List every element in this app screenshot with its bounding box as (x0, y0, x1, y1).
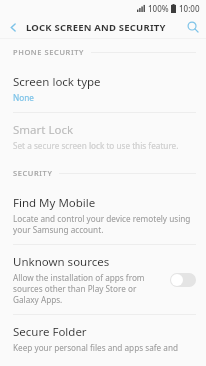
staticText: Screen lock type (13, 74, 101, 90)
staticText: Smart Lock (13, 122, 74, 138)
button[interactable]: Smart Lock (0, 113, 206, 160)
button[interactable]: Secure Folder (0, 315, 206, 366)
button[interactable]: Search (180, 16, 206, 38)
staticText: Allow the installation of apps from sour… (13, 272, 162, 305)
button[interactable]: Unknown sources toggle (170, 273, 196, 287)
button[interactable]: Screen lock type (0, 65, 206, 113)
button[interactable]: Unknown sources (0, 245, 206, 315)
staticText: PHONE SECURITY (13, 47, 85, 57)
staticText: 10:00 (179, 3, 200, 14)
staticText: LOCK SCREEN AND SECURITY (26, 21, 166, 34)
staticText: 100% (148, 3, 169, 14)
button[interactable]: Back (0, 16, 26, 38)
staticText: Find My Mobile (13, 195, 96, 211)
staticText: Set a secure screen lock to use this fea… (13, 140, 179, 151)
staticText: Locate and control your device remotely … (13, 213, 196, 235)
staticText: Keep your personal files and apps safe a… (13, 342, 196, 357)
staticText: SECURITY (13, 168, 53, 178)
staticText: Secure Folder (13, 324, 87, 340)
staticText: None (13, 92, 34, 103)
staticText: Unknown sources (13, 254, 110, 270)
button[interactable]: Find My Mobile (0, 186, 206, 245)
